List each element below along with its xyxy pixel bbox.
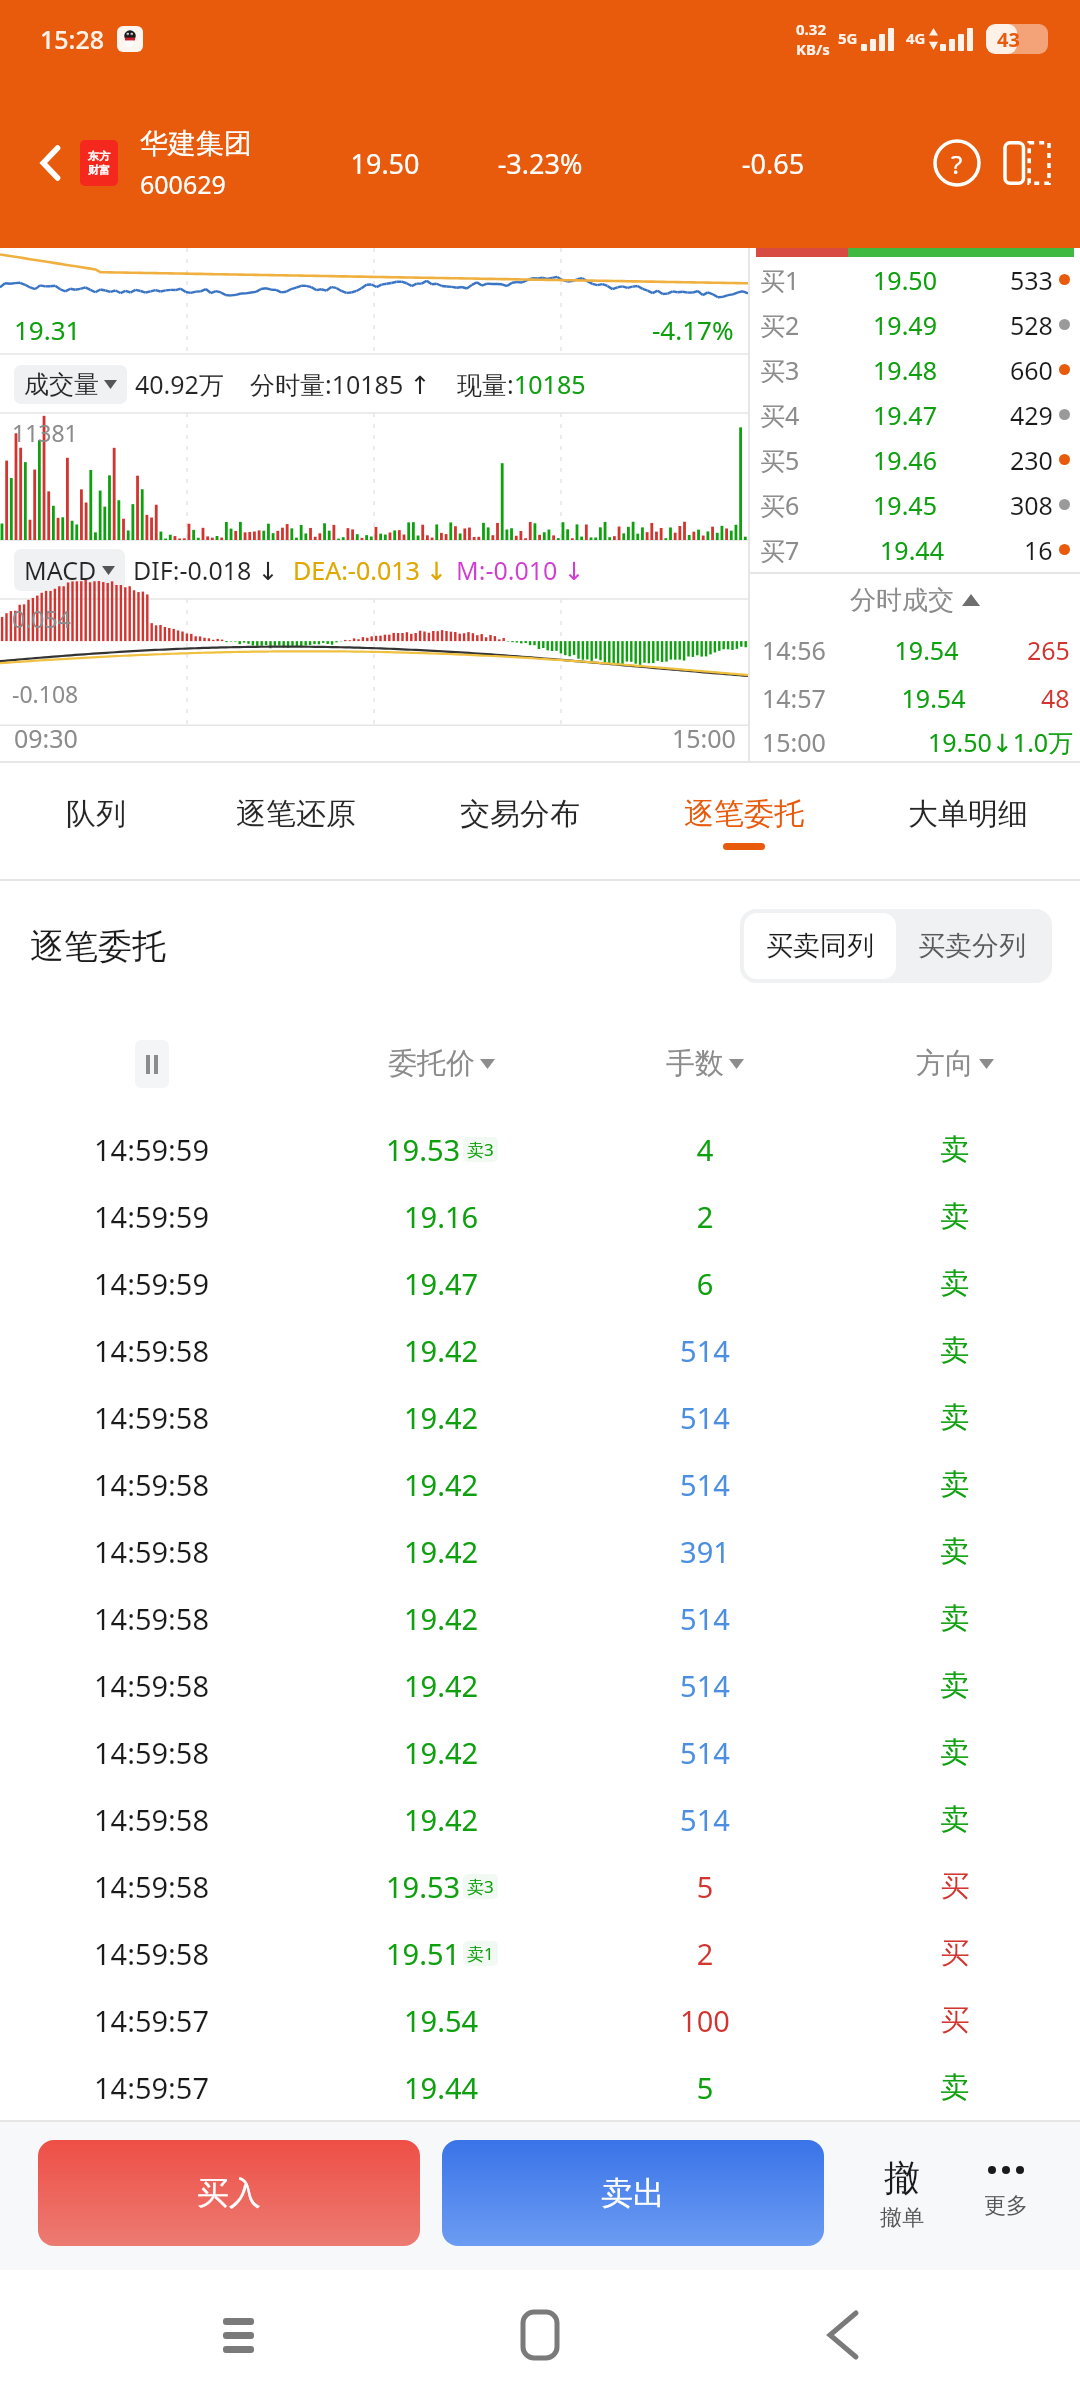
button[interactable]: 更多 (954, 2140, 1058, 2246)
staticText: 19.54 (826, 633, 1027, 667)
staticText: 19.31 (14, 312, 81, 347)
staticText: 买7 (760, 533, 800, 567)
staticText: 19.50 (310, 145, 460, 182)
button[interactable]: 买6 (750, 482, 1080, 527)
staticText: 19.49 (800, 308, 1010, 342)
button[interactable]: 15:00 (750, 722, 1080, 761)
button[interactable]: 14:59:59 (0, 1183, 1080, 1250)
button[interactable]: 买卖分列 (896, 913, 1048, 979)
staticText: 19.51 (386, 1934, 461, 1973)
staticText: 40.92万 (135, 367, 224, 401)
button[interactable]: MACD (14, 549, 125, 591)
button[interactable]: 14:59:58 (0, 1585, 1080, 1652)
staticText: 撤单 (880, 2204, 924, 2232)
staticText: 手数 (666, 1045, 724, 1082)
staticText: 14:59:58 (0, 1398, 303, 1437)
staticText: -4.17% (652, 312, 734, 347)
staticText: 15:00 (672, 721, 736, 755)
button[interactable]: 撤 (850, 2140, 954, 2246)
button[interactable]: Recents (173, 2270, 303, 2400)
button[interactable]: 14:59:58 (0, 1652, 1080, 1719)
button[interactable]: 买2 (750, 302, 1080, 347)
button[interactable]: Home (475, 2270, 605, 2400)
button[interactable]: 14:59:58 (0, 1518, 1080, 1585)
staticText: 买 (830, 2002, 1080, 2039)
staticText: 100 (580, 2001, 830, 2040)
staticText: 委托价 (388, 1045, 475, 1082)
button[interactable]: 买入 (38, 2140, 420, 2246)
button[interactable]: 14:59:58 (0, 1719, 1080, 1786)
staticText: 14:59:57 (0, 2001, 303, 2040)
staticText: -0.65 (620, 145, 926, 182)
button[interactable]: 14:59:57 (0, 1987, 1080, 2054)
staticText: 卖 (830, 2069, 1080, 2106)
button[interactable]: 买5 (750, 437, 1080, 482)
staticText: 4 (580, 1130, 830, 1169)
button[interactable]: 14:57 (750, 674, 1080, 722)
button[interactable]: 买4 (750, 392, 1080, 437)
staticText: 分时成交 (850, 584, 954, 617)
button[interactable]: 分时成交 (750, 574, 1080, 626)
button[interactable]: 委托价 (303, 1011, 580, 1116)
staticText: 19.46 (800, 443, 1010, 477)
button[interactable]: 方向 (830, 1011, 1080, 1116)
button[interactable]: 大单明细 (856, 763, 1080, 881)
button[interactable]: 14:59:58 (0, 1920, 1080, 1987)
staticText: 19.42 (404, 1666, 479, 1705)
button[interactable]: 逐笔还原 (184, 763, 408, 881)
button[interactable]: Back (778, 2270, 908, 2400)
staticText: 14:59:58 (0, 1331, 303, 1370)
staticText: 成交量 (24, 369, 99, 400)
button[interactable]: 东方 (80, 140, 118, 186)
staticText: 5G (838, 28, 858, 48)
staticText: 卖 (830, 1332, 1080, 1369)
button[interactable]: 买1 (750, 257, 1080, 302)
button[interactable]: 卖出 (442, 2140, 824, 2246)
staticText: 卖1 (467, 1942, 494, 1965)
staticText: 逐笔还原 (236, 795, 356, 833)
staticText: 19.42 (404, 1733, 479, 1772)
button[interactable]: 买3 (750, 347, 1080, 392)
staticText: 逐笔委托 (30, 925, 166, 968)
button[interactable]: 买7 (750, 527, 1080, 572)
button[interactable]: 手数 (580, 1011, 830, 1116)
staticText: 卖3 (467, 1875, 494, 1898)
staticText: 买2 (760, 308, 800, 342)
button[interactable]: 14:59:58 (0, 1451, 1080, 1518)
staticText: 卖 (830, 1131, 1080, 1168)
staticText: 撤 (884, 2155, 920, 2200)
button[interactable]: 逐笔委托 (632, 763, 856, 881)
staticText: 19.47 (800, 398, 1010, 432)
staticText: 19.44 (800, 533, 1024, 567)
button[interactable]: 14:59:59 (0, 1250, 1080, 1317)
staticText: 514 (580, 1331, 830, 1370)
staticText: 19.48 (800, 353, 1010, 387)
staticText: 买3 (760, 353, 800, 387)
button[interactable]: 14:59:57 (0, 2054, 1080, 2120)
staticText: 14:59:57 (0, 2068, 303, 2107)
staticText: 230 (1010, 443, 1053, 477)
button[interactable]: 买卖同列 (744, 913, 896, 979)
button[interactable]: Help (926, 132, 988, 194)
button[interactable]: 14:56 (750, 626, 1080, 674)
button[interactable]: 队列 (8, 763, 184, 881)
staticText: 14:56 (762, 633, 826, 667)
staticText: 429 (1010, 398, 1053, 432)
button[interactable]: Back (22, 134, 80, 192)
staticText: 19.42 (404, 1532, 479, 1571)
staticText: 大单明细 (908, 795, 1028, 833)
button[interactable]: 14:59:59 (0, 1116, 1080, 1183)
button[interactable]: 14:59:58 (0, 1853, 1080, 1920)
staticText: 19.54 (826, 681, 1041, 715)
staticText: 卖 (830, 1198, 1080, 1235)
button[interactable]: 交易分布 (408, 763, 632, 881)
staticText: 533 (1010, 263, 1053, 297)
button[interactable]: 14:59:58 (0, 1786, 1080, 1853)
button[interactable]: 成交量 (14, 365, 127, 404)
button[interactable]: 14:59:58 (0, 1317, 1080, 1384)
button[interactable]: 14:59:58 (0, 1384, 1080, 1451)
staticText: 19.42 (404, 1465, 479, 1504)
staticText: 华建集团 (140, 126, 252, 161)
button[interactable]: Fullscreen (996, 132, 1058, 194)
button[interactable]: Pause (135, 1040, 169, 1088)
